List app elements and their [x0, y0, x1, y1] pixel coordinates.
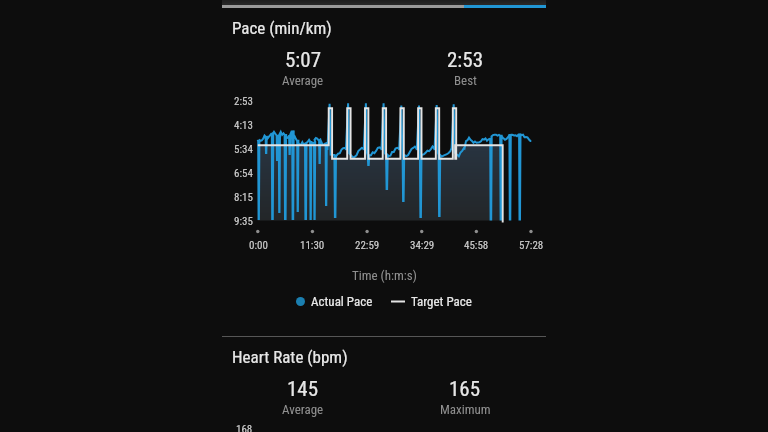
staticText: 57:28: [519, 239, 544, 252]
staticText: Time (h:m:s): [352, 268, 417, 283]
staticText: 45:58: [464, 239, 489, 252]
staticText: Heart Rate (bpm): [232, 347, 348, 367]
staticText: Maximum: [440, 402, 491, 417]
staticText: 2:53: [234, 95, 253, 108]
staticText: Best: [454, 73, 477, 88]
staticText: Actual Pace: [311, 294, 373, 309]
staticText: 4:13: [234, 119, 253, 132]
staticText: 5:07: [285, 48, 322, 73]
staticText: 165: [449, 377, 481, 402]
staticText: 168: [236, 423, 253, 432]
staticText: Average: [282, 402, 324, 417]
staticText: 34:29: [410, 239, 435, 252]
staticText: 8:15: [234, 191, 253, 204]
staticText: 0:00: [249, 239, 268, 252]
staticText: 145: [287, 377, 319, 402]
staticText: 9:35: [234, 215, 253, 228]
staticText: Average: [282, 73, 324, 88]
staticText: Target Pace: [411, 294, 472, 309]
staticText: 11:30: [300, 239, 325, 252]
staticText: 6:54: [234, 167, 253, 180]
button[interactable]: Heart Rate (bpm): [232, 347, 348, 367]
staticText: 22:59: [355, 239, 380, 252]
staticText: Pace (min/km): [232, 18, 332, 38]
staticText: 2:53: [447, 48, 484, 73]
button[interactable]: Pace (min/km): [232, 18, 332, 38]
staticText: 5:34: [234, 143, 253, 156]
